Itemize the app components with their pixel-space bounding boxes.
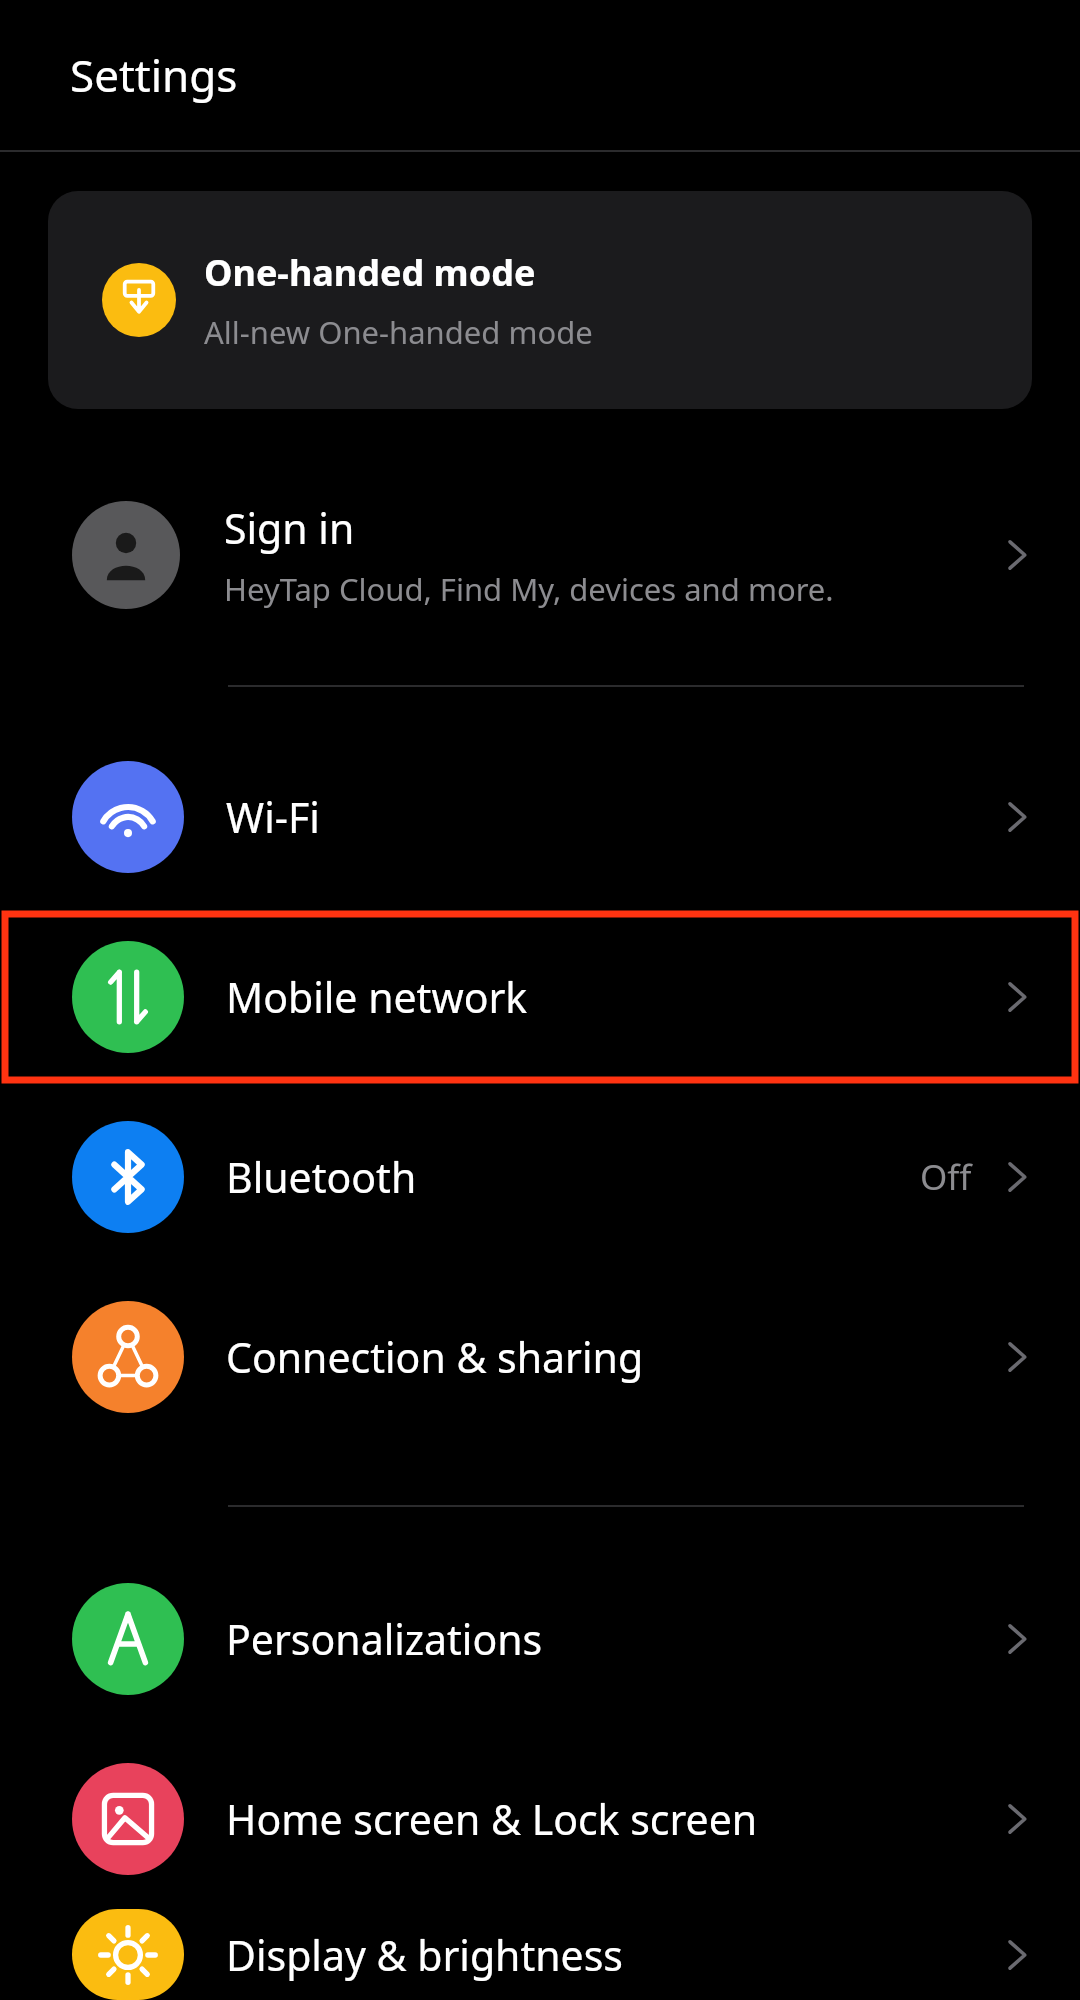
staticText: Connection & sharing: [226, 1329, 996, 1385]
button[interactable]: Connection & sharing: [0, 1267, 1080, 1447]
button[interactable]: Sign in: [0, 485, 1080, 625]
staticText: All-new One-handed mode: [204, 311, 593, 353]
button[interactable]: Personalizations: [0, 1549, 1080, 1729]
staticText: Personalizations: [226, 1611, 996, 1667]
staticText: One-handed mode: [204, 248, 536, 297]
staticText: Bluetooth: [226, 1149, 920, 1205]
staticText: Home screen & Lock screen: [226, 1791, 996, 1847]
staticText: Sign in: [224, 500, 355, 556]
staticText: Mobile network: [226, 969, 996, 1025]
button[interactable]: Display & brightness: [0, 1909, 1080, 2000]
button[interactable]: Bluetooth: [0, 1087, 1080, 1267]
button[interactable]: Wi-Fi: [0, 727, 1080, 907]
staticText: Display & brightness: [226, 1927, 996, 1983]
button[interactable]: Home screen & Lock screen: [0, 1729, 1080, 1909]
staticText: Off: [920, 1153, 972, 1201]
other: Open sign in: [996, 535, 1036, 575]
staticText: Wi-Fi: [226, 789, 996, 845]
staticText: HeyTap Cloud, Find My, devices and more.: [224, 568, 834, 610]
button[interactable]: Mobile network: [0, 907, 1080, 1087]
staticText: Settings: [70, 45, 238, 105]
button[interactable]: One-handed mode: [48, 191, 1032, 409]
